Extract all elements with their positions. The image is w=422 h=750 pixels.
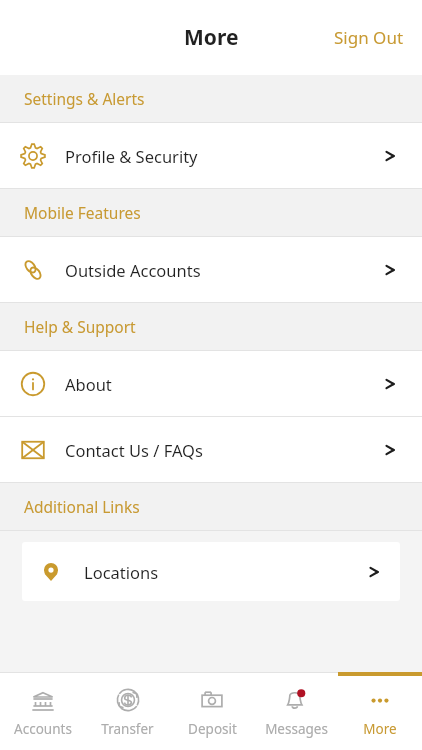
staticText: Help & Support (24, 316, 136, 337)
staticText: Settings & Alerts (24, 88, 145, 109)
staticText: Profile & Security (65, 145, 198, 167)
button[interactable]: About (0, 351, 422, 416)
staticText: Contact Us / FAQs (65, 439, 203, 461)
staticText: Mobile Features (24, 202, 141, 223)
staticText: Messages (265, 720, 328, 738)
button[interactable]: Locations (22, 542, 400, 601)
button[interactable]: Sign Out (316, 12, 422, 63)
button[interactable]: Deposit (170, 672, 254, 750)
staticText: More (184, 23, 239, 52)
staticText: About (65, 373, 112, 395)
staticText: Transfer (101, 720, 154, 738)
button[interactable]: Profile & Security (0, 123, 422, 188)
button[interactable]: Messages (254, 672, 338, 750)
button[interactable]: Contact Us / FAQs (0, 417, 422, 482)
staticText: Accounts (14, 720, 72, 738)
button[interactable]: Accounts (0, 672, 85, 750)
staticText: Additional Links (24, 496, 140, 517)
button[interactable]: Transfer (85, 672, 170, 750)
staticText: Locations (84, 561, 159, 583)
staticText: Sign Out (334, 26, 404, 49)
button[interactable]: Outside Accounts (0, 237, 422, 302)
staticText: Outside Accounts (65, 259, 201, 281)
button[interactable]: More (338, 672, 422, 750)
staticText: Deposit (188, 720, 237, 738)
staticText: More (363, 720, 397, 738)
